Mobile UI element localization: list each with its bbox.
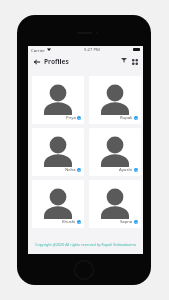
staticText: Profiles [44,57,69,66]
button[interactable]: Priya [32,76,84,124]
button[interactable]: Ayushi [89,128,141,176]
button[interactable]: Rupali [89,76,141,124]
button[interactable]: Filter [119,56,128,65]
button[interactable]: Back [32,57,41,66]
staticText: Ayushi [119,167,133,173]
staticText: 5:27 PM [84,47,100,53]
button[interactable]: Sapna [89,180,141,228]
button[interactable]: Khushi [32,180,84,228]
staticText: Khushi [62,219,76,225]
staticText: Carrier [31,47,45,53]
staticText: Sapna [120,219,133,225]
staticText: Priya [66,115,76,121]
button[interactable]: Neha [32,128,84,176]
staticText: Neha [65,167,76,173]
button[interactable]: Grid view [130,57,139,66]
staticText: Rupali [120,115,133,121]
staticText: Copyright @2020 All rights reserved by R… [35,242,136,247]
